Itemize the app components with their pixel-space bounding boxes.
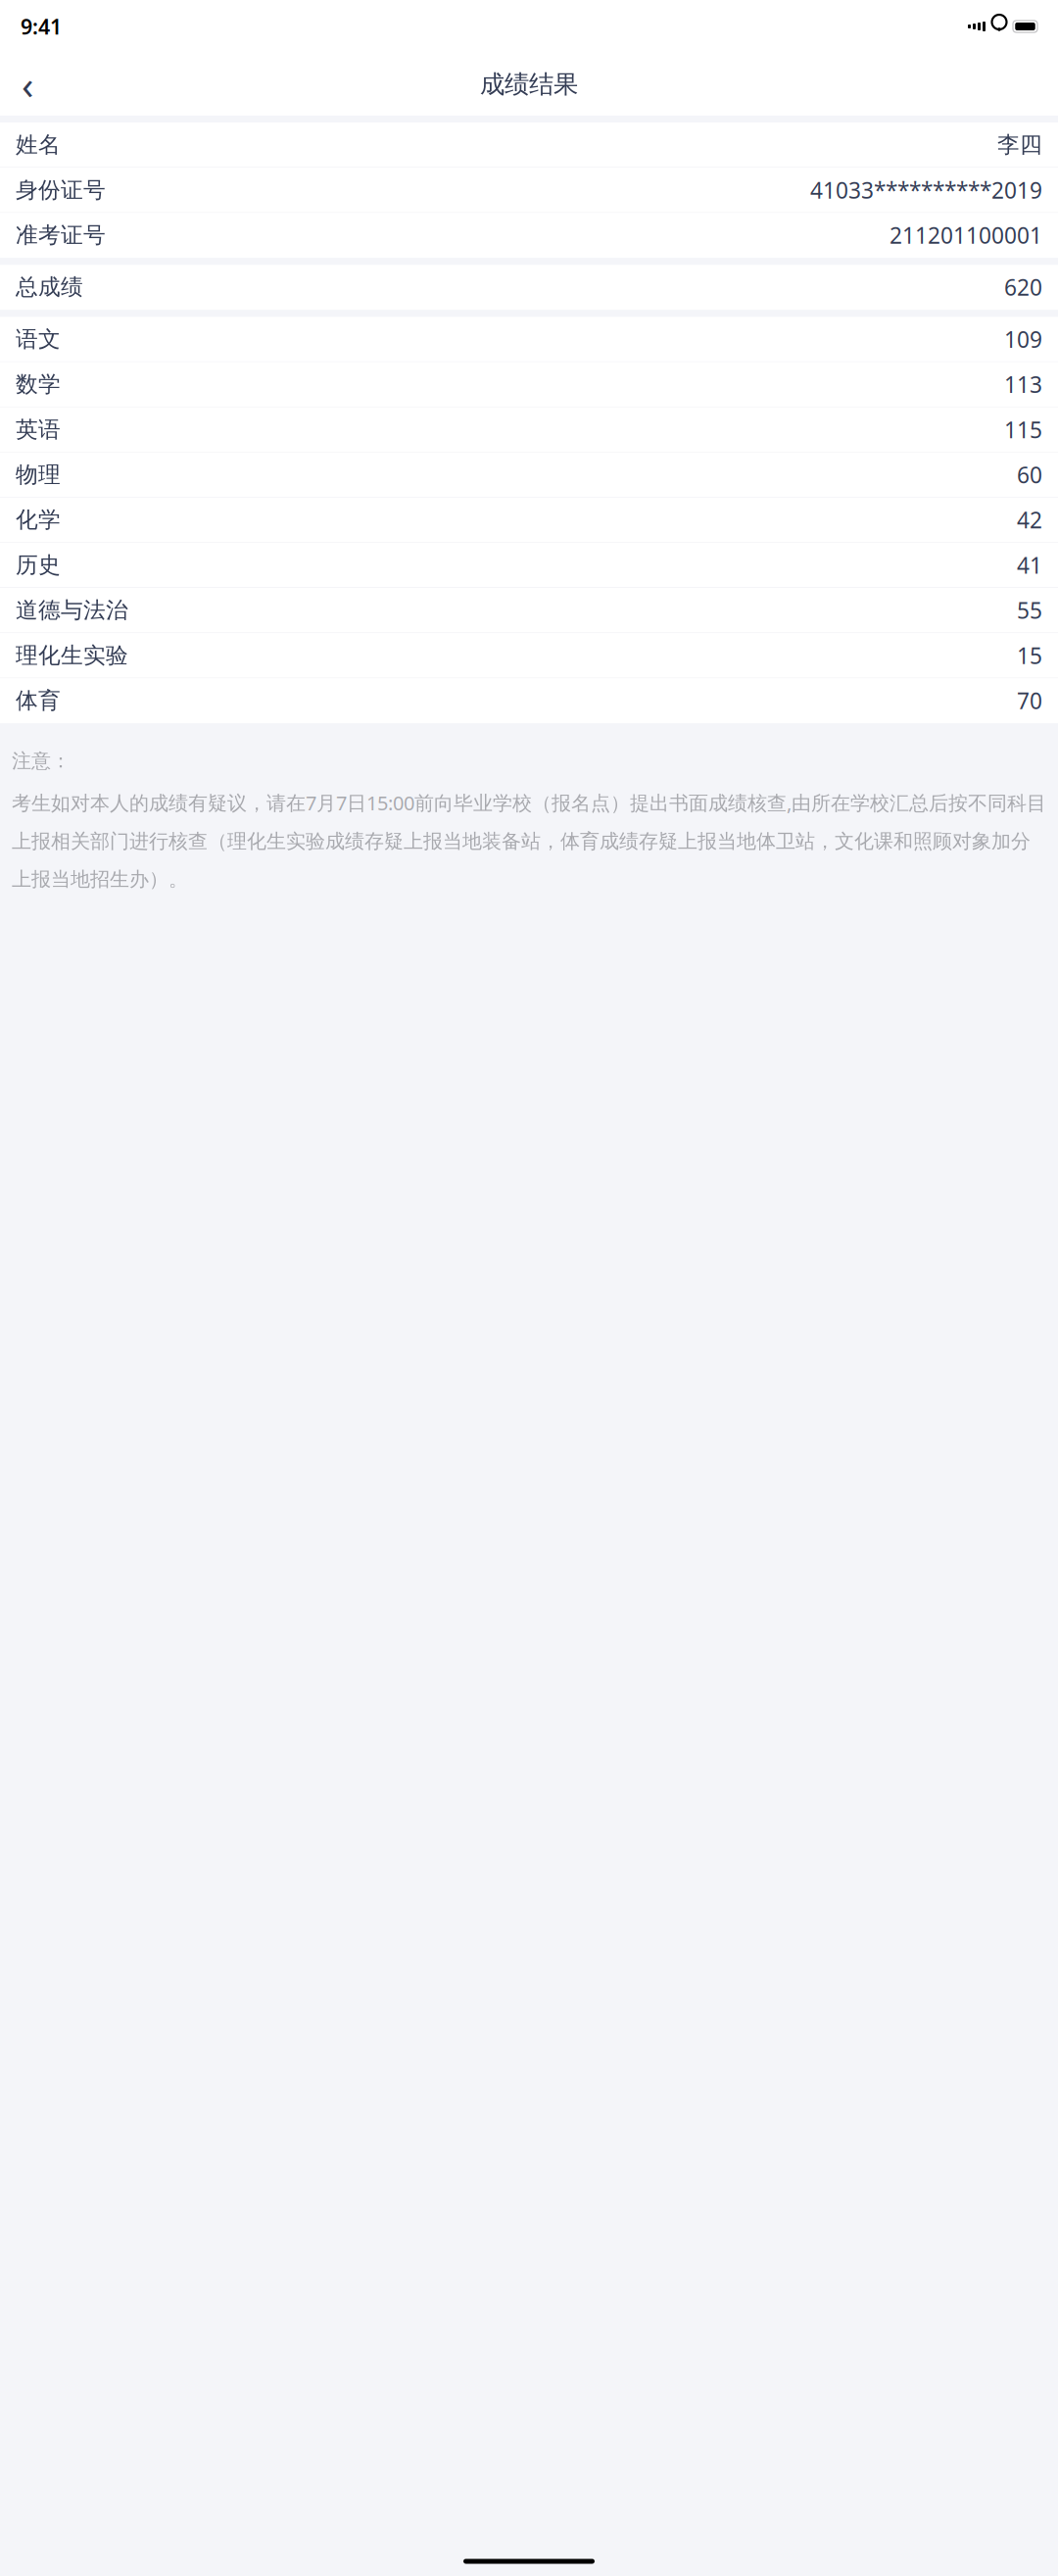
staticText: 英语 bbox=[16, 416, 61, 443]
staticText: 注意： bbox=[12, 749, 71, 773]
staticText: 41 bbox=[1017, 550, 1042, 580]
staticText: 42 bbox=[1017, 505, 1042, 535]
button[interactable]: 道德与法治 bbox=[0, 588, 1058, 633]
staticText: 55 bbox=[1017, 595, 1042, 625]
button[interactable]: 体育 bbox=[0, 678, 1058, 723]
staticText: 620 bbox=[1004, 272, 1042, 302]
button[interactable]: 英语 bbox=[0, 407, 1058, 452]
button[interactable]: 语文 bbox=[0, 317, 1058, 362]
button[interactable]: 物理 bbox=[0, 452, 1058, 498]
staticText: 70 bbox=[1017, 686, 1042, 715]
button[interactable]: 身份证号 bbox=[0, 168, 1058, 213]
staticText: 成绩结果 bbox=[480, 69, 578, 99]
button[interactable]: 数学 bbox=[0, 362, 1058, 407]
staticText: 109 bbox=[1004, 324, 1042, 354]
staticText: 化学 bbox=[16, 506, 61, 533]
staticText: 语文 bbox=[16, 326, 61, 353]
staticText: 道德与法治 bbox=[16, 597, 128, 624]
button[interactable]: 化学 bbox=[0, 498, 1058, 543]
staticText: 9:41 bbox=[21, 13, 62, 40]
staticText: 113 bbox=[1004, 370, 1042, 399]
staticText: 物理 bbox=[16, 461, 61, 488]
staticText: 总成绩 bbox=[16, 273, 83, 301]
staticText: 211201100001 bbox=[890, 220, 1042, 250]
staticText: 15 bbox=[1017, 641, 1042, 670]
staticText: 身份证号 bbox=[16, 176, 106, 204]
button[interactable]: 总成绩 bbox=[0, 265, 1058, 310]
staticText: 115 bbox=[1004, 415, 1042, 444]
staticText: 理化生实验 bbox=[16, 642, 128, 669]
staticText: 41033**********2019 bbox=[810, 175, 1042, 205]
button[interactable]: 准考证号 bbox=[0, 213, 1058, 258]
button[interactable]: Back bbox=[6, 63, 49, 106]
button[interactable]: 姓名 bbox=[0, 122, 1058, 168]
staticText: 准考证号 bbox=[16, 221, 106, 249]
button[interactable]: 理化生实验 bbox=[0, 633, 1058, 678]
staticText: 60 bbox=[1017, 460, 1042, 489]
staticText: 李四 bbox=[997, 131, 1042, 158]
button[interactable]: 历史 bbox=[0, 543, 1058, 588]
staticText: 考生如对本人的成绩有疑议，请在7月7日15:00前向毕业学校（报名点）提出书面成… bbox=[12, 790, 1046, 891]
staticText: ‹ bbox=[22, 58, 33, 110]
staticText: 数学 bbox=[16, 371, 61, 398]
staticText: 历史 bbox=[16, 551, 61, 579]
staticText: 姓名 bbox=[16, 131, 61, 158]
staticText: 体育 bbox=[16, 687, 61, 714]
